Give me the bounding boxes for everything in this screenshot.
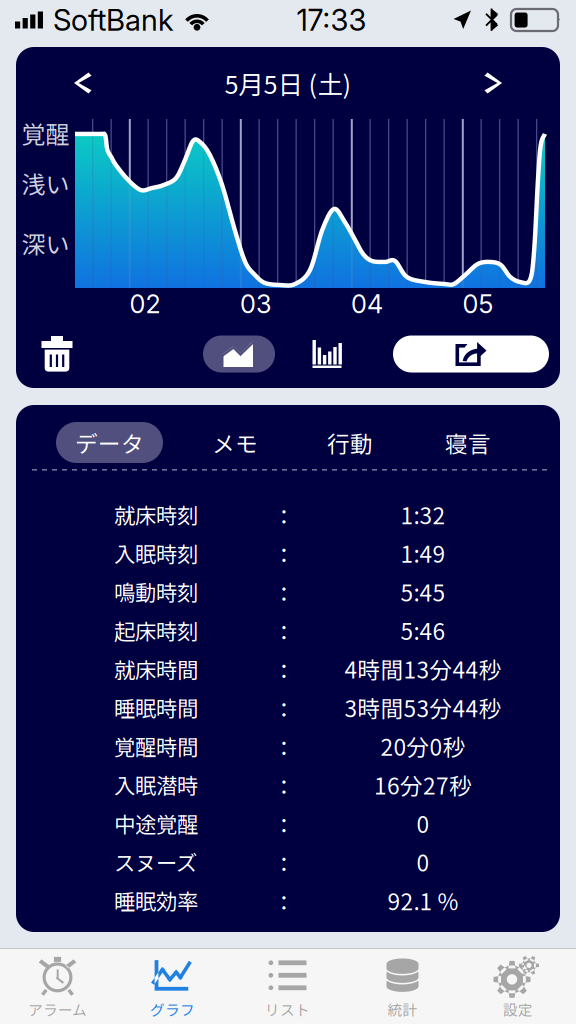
staticText: スヌーズ [114, 846, 197, 877]
staticText: 設定 [503, 998, 533, 1020]
staticText: : [280, 576, 287, 607]
staticText: 統計 [387, 998, 417, 1020]
staticText: 1:32 [400, 498, 445, 531]
button[interactable]: Next day [470, 41, 560, 124]
staticText: 04 [351, 289, 383, 319]
button[interactable]: 設定 [460, 948, 576, 1024]
staticText: 5:46 [400, 614, 445, 646]
button[interactable]: Delete [26, 324, 88, 384]
staticText: リスト [265, 998, 310, 1020]
staticText: 5:45 [400, 575, 445, 608]
button[interactable]: データ [56, 422, 163, 463]
staticText: 睡眠時間 [114, 692, 198, 723]
button[interactable]: 統計 [345, 948, 460, 1024]
staticText: メモ [212, 426, 258, 459]
staticText: SoftBank [53, 2, 174, 38]
button[interactable]: メモ [190, 422, 280, 463]
staticText: 05 [462, 289, 493, 319]
staticText: : [280, 846, 287, 877]
staticText: 入眠潜時 [114, 769, 198, 800]
button[interactable]: Graph view [203, 335, 275, 372]
staticText: : [280, 538, 287, 568]
staticText: 覚醒 [21, 116, 69, 150]
staticText: 0 [416, 807, 429, 839]
button[interactable]: グラフ [115, 948, 230, 1024]
staticText: 寝言 [445, 426, 491, 459]
staticText: : [280, 692, 287, 723]
staticText: 覚醒時間 [114, 730, 198, 761]
staticText: データ [75, 426, 144, 459]
staticText: 20分0秒 [380, 729, 465, 762]
staticText: 1:49 [400, 536, 445, 569]
staticText: 16分27秒 [374, 768, 472, 801]
staticText: : [280, 885, 287, 916]
staticText: 浅い [21, 166, 69, 200]
staticText: : [280, 499, 287, 530]
staticText: 17:33 [296, 2, 366, 38]
staticText: 4時間13分44秒 [344, 652, 501, 685]
button[interactable]: リスト [230, 948, 345, 1024]
staticText: アラーム [28, 998, 87, 1020]
staticText: : [280, 653, 287, 684]
staticText: 92.1 % [387, 884, 458, 917]
button[interactable]: 寝言 [423, 422, 513, 463]
staticText: 入眠時刻 [114, 537, 198, 568]
staticText: 鳴動時刻 [114, 576, 198, 607]
staticText: 深い [21, 226, 69, 260]
button[interactable]: アラーム [0, 948, 115, 1024]
staticText: 5月5日 (土) [224, 65, 351, 101]
staticText: 睡眠効率 [114, 885, 198, 916]
staticText: : [280, 615, 287, 645]
staticText: 就床時刻 [114, 499, 198, 530]
staticText: 行動 [327, 426, 373, 459]
staticText: 03 [240, 289, 272, 319]
button[interactable]: Share [393, 335, 549, 372]
staticText: 3時間53分44秒 [344, 691, 501, 724]
staticText: 中途覚醒 [114, 808, 198, 839]
button[interactable]: 行動 [305, 422, 395, 463]
staticText: 02 [129, 289, 160, 319]
staticText: : [280, 731, 287, 761]
button[interactable]: Statistics view [302, 324, 354, 384]
staticText: 起床時刻 [114, 615, 198, 646]
staticText: : [280, 769, 287, 800]
staticText: 就床時間 [114, 653, 198, 684]
button[interactable]: Previous day [16, 41, 106, 124]
staticText: 0 [416, 845, 429, 878]
staticText: グラフ [150, 998, 195, 1020]
staticText: : [280, 808, 287, 838]
